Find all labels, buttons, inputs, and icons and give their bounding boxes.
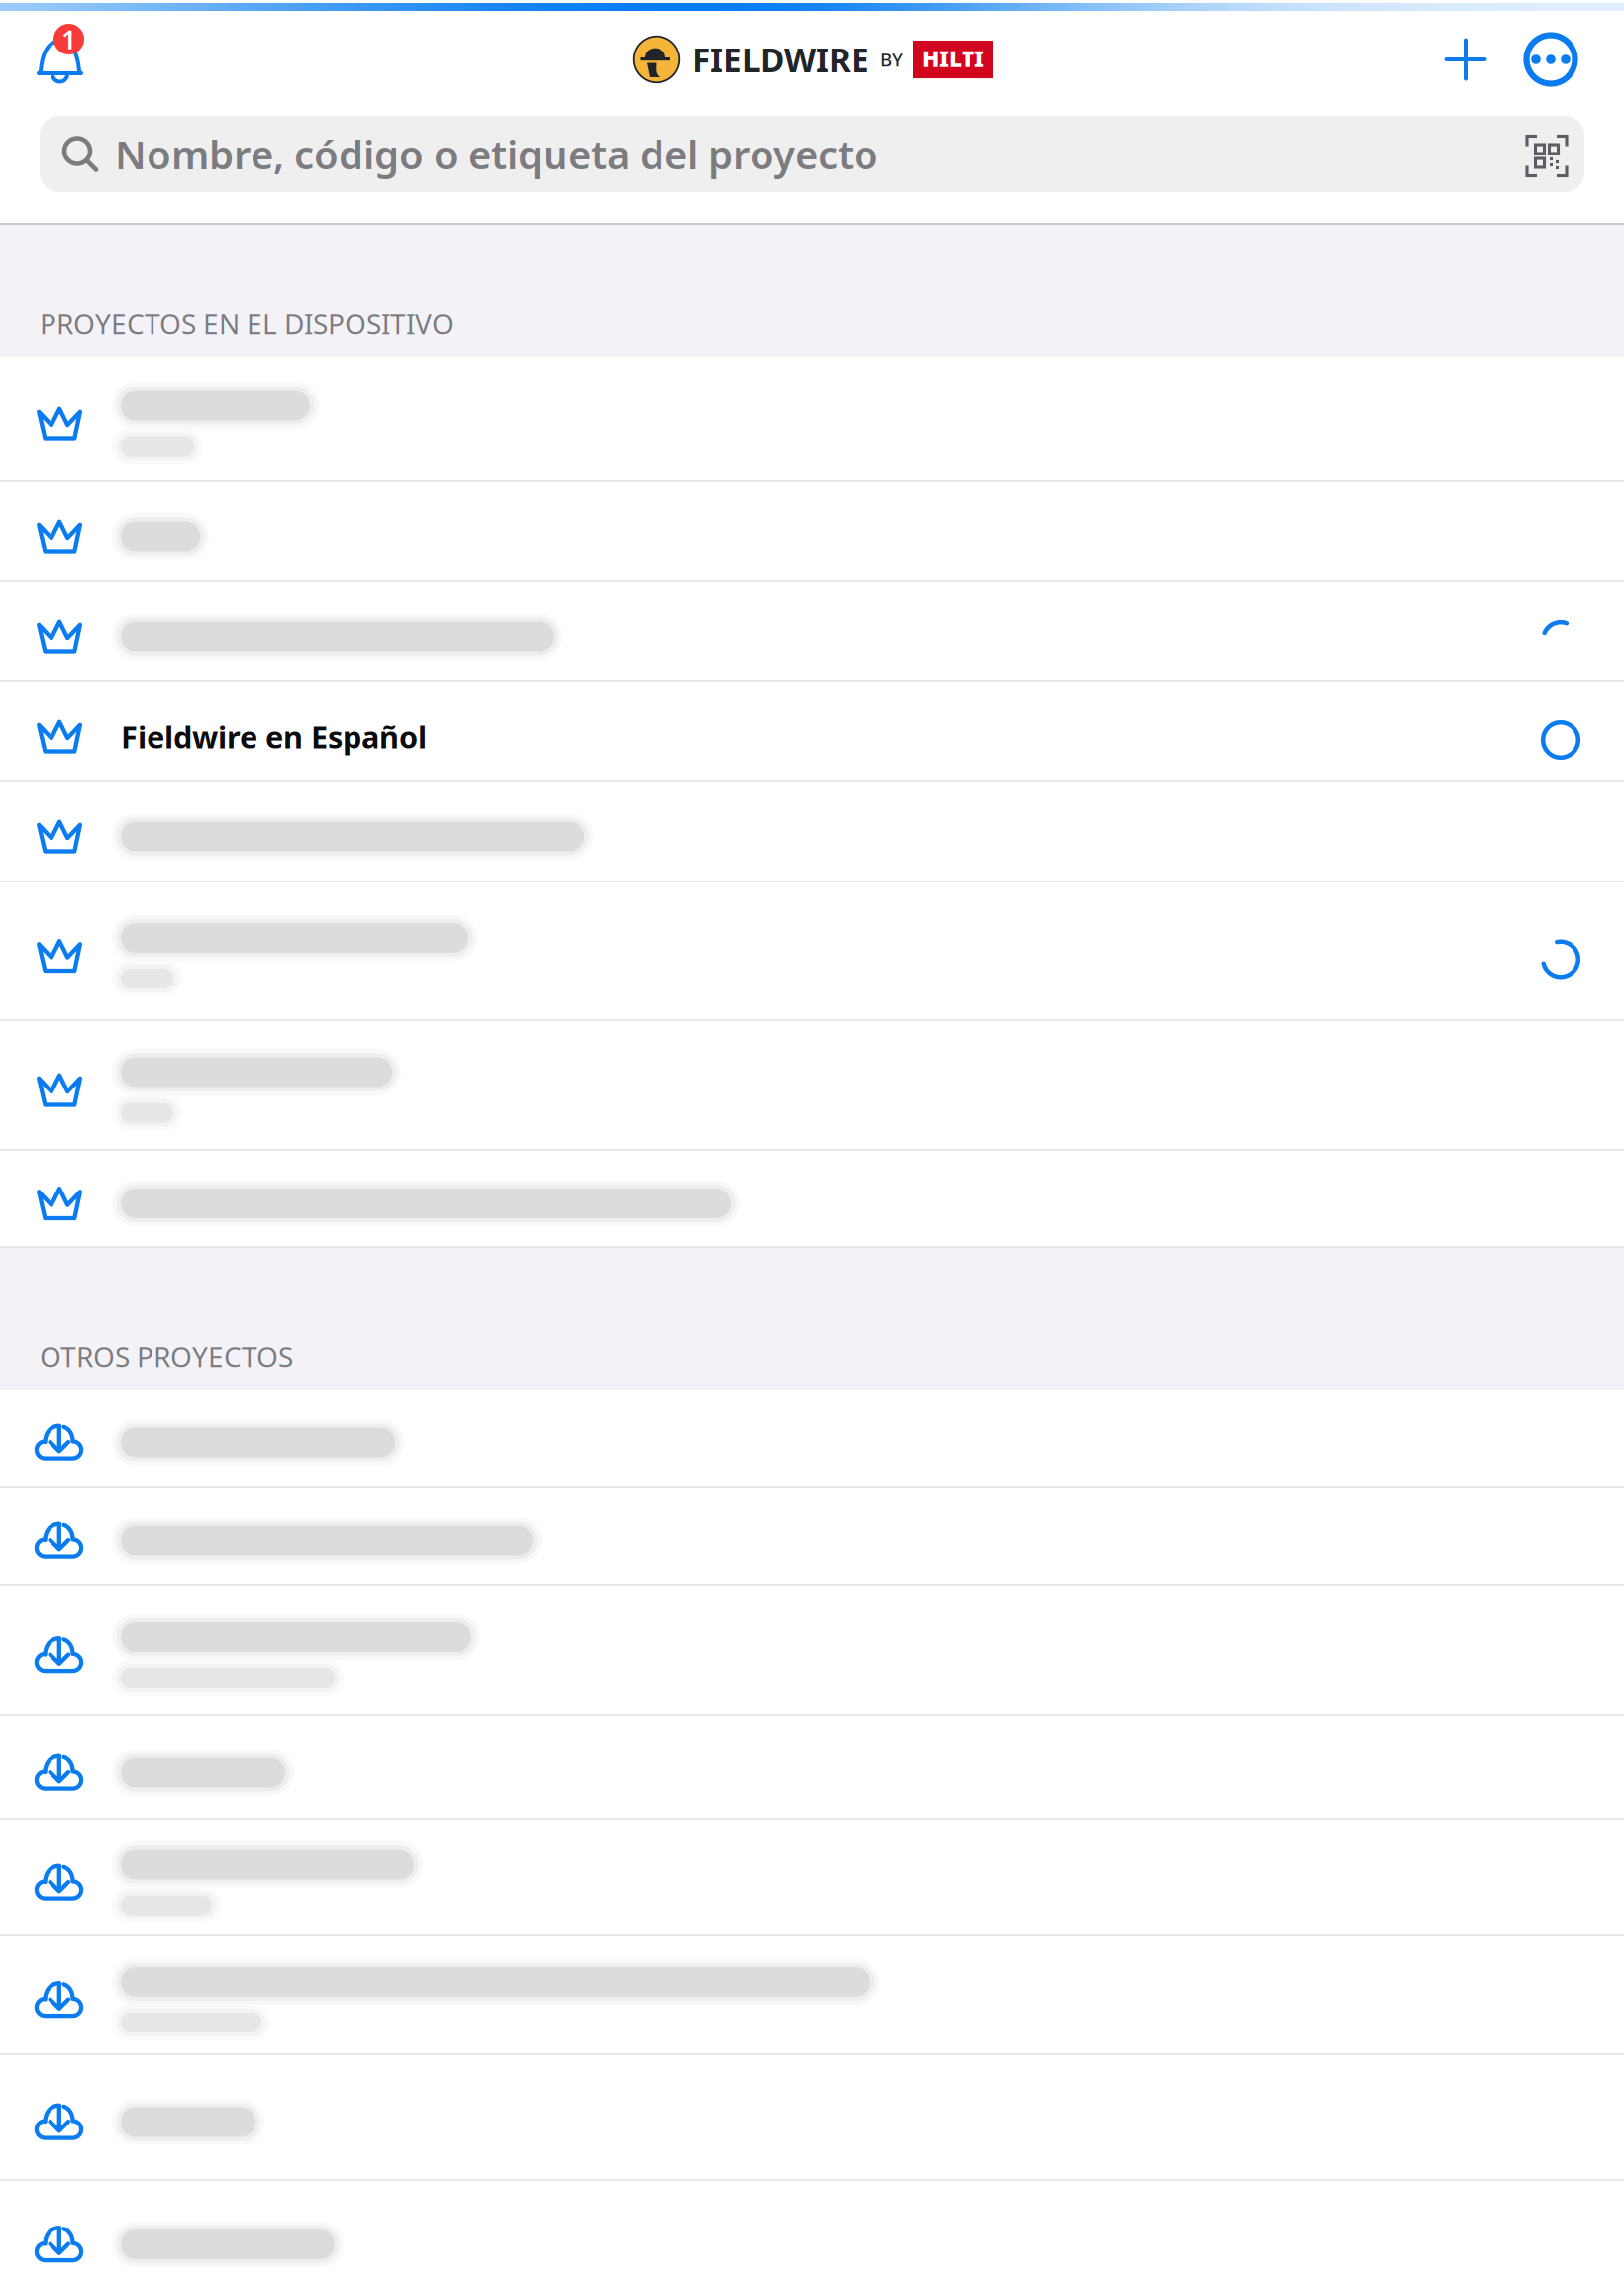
button[interactable]: Notifications xyxy=(38,24,84,95)
button[interactable] xyxy=(0,1390,1624,1488)
button[interactable] xyxy=(0,2181,1624,2280)
button[interactable] xyxy=(0,1716,1624,1820)
staticText: OTROS PROYECTOS xyxy=(40,1338,293,1375)
button[interactable] xyxy=(0,582,1624,682)
staticText: Nombre, código o etiqueta del proyecto xyxy=(115,128,878,180)
button[interactable] xyxy=(0,1151,1624,1248)
button[interactable] xyxy=(0,482,1624,582)
button[interactable] xyxy=(0,1021,1624,1151)
staticText: BY xyxy=(880,47,903,72)
button[interactable] xyxy=(0,782,1624,882)
button[interactable] xyxy=(0,1488,1624,1586)
staticText: PROYECTOS EN EL DISPOSITIVO xyxy=(40,305,454,342)
button[interactable] xyxy=(0,357,1624,482)
button[interactable] xyxy=(0,882,1624,1021)
staticText: 1 xyxy=(61,22,76,57)
staticText: HILTI xyxy=(922,43,984,73)
button[interactable] xyxy=(0,2055,1624,2181)
button[interactable] xyxy=(0,1586,1624,1716)
button[interactable]: Add project xyxy=(1436,30,1495,89)
button[interactable]: Fieldwire en Español xyxy=(0,682,1624,782)
button[interactable]: More options xyxy=(1521,30,1580,89)
staticText: Fieldwire en Español xyxy=(121,716,427,757)
button[interactable] xyxy=(0,1820,1624,1936)
staticText: FIELDWIRE xyxy=(692,38,869,81)
button[interactable] xyxy=(0,1936,1624,2055)
